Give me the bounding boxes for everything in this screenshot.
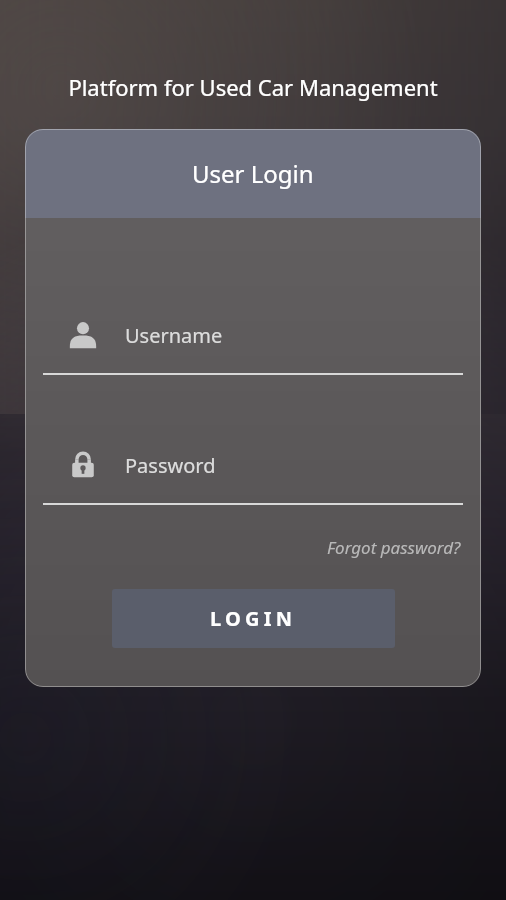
staticText: Platform for Used Car Management bbox=[14, 72, 492, 102]
other: Username bbox=[69, 321, 97, 349]
button[interactable]: Username bbox=[43, 315, 463, 375]
staticText: User Login bbox=[192, 157, 314, 190]
other: Password bbox=[69, 451, 97, 479]
staticText: LOGIN bbox=[210, 605, 297, 632]
button[interactable]: LOGIN bbox=[112, 589, 395, 648]
staticText: Forgot password? bbox=[327, 536, 461, 559]
button[interactable]: Password bbox=[43, 445, 463, 505]
button[interactable]: Forgot password? bbox=[325, 532, 463, 563]
staticText: Password bbox=[125, 452, 216, 479]
staticText: Username bbox=[125, 322, 223, 349]
